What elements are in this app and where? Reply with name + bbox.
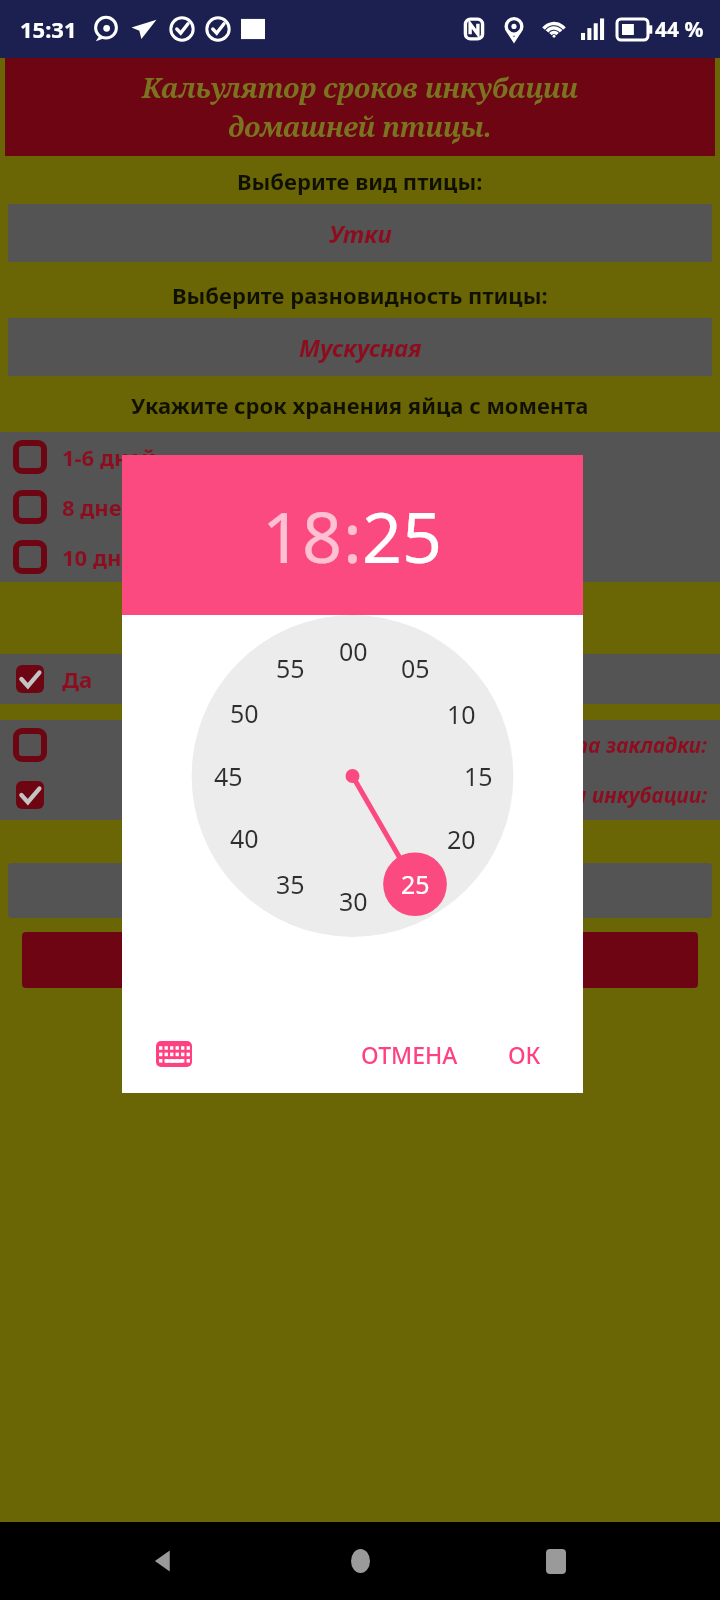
staticText: 15:31 xyxy=(20,14,77,44)
staticText: 05 xyxy=(401,651,430,685)
staticText: 18 xyxy=(262,488,343,583)
button[interactable]: 00 xyxy=(328,630,378,672)
button[interactable]: 1-6 дней xyxy=(0,432,720,482)
staticText: 25 xyxy=(362,488,443,583)
staticText: Дата закладки: xyxy=(542,731,708,760)
staticText: ОК xyxy=(508,1039,541,1070)
button[interactable]: Время инкубации: xyxy=(0,770,720,820)
staticText: : xyxy=(343,488,362,583)
button[interactable]: 50 xyxy=(219,692,269,734)
staticText: 15 xyxy=(464,759,493,793)
button[interactable]: 15 xyxy=(453,755,503,797)
staticText: 35 xyxy=(276,867,305,901)
staticText: Время инкубации: xyxy=(522,781,708,810)
button[interactable]: 25 xyxy=(390,863,440,905)
button[interactable]: Утки xyxy=(8,204,712,262)
staticText: Укажите срок хранения яйца с момента xyxy=(131,390,589,420)
button[interactable]: 8 дней xyxy=(0,482,720,532)
staticText: Утки xyxy=(329,217,392,250)
staticText: 00 xyxy=(339,634,368,668)
staticText: 55 xyxy=(276,651,305,685)
staticText: 25 xyxy=(401,867,430,901)
button[interactable]: 45 xyxy=(203,755,253,797)
button[interactable]: 10 xyxy=(436,693,486,735)
button[interactable]: Мускусная xyxy=(8,318,712,376)
button[interactable]: ОК xyxy=(496,1029,553,1080)
staticText: 8 дней xyxy=(62,492,137,522)
staticText: 20 xyxy=(447,822,476,856)
button[interactable]: 55 xyxy=(265,647,315,689)
button[interactable]: Да xyxy=(0,654,720,704)
staticText: ОТМЕНА xyxy=(361,1039,458,1070)
staticText: 19:00 xyxy=(330,874,390,907)
staticText: 10 дней xyxy=(62,542,150,572)
button[interactable]: 40 xyxy=(219,817,269,859)
button[interactable]: 05 xyxy=(390,647,440,689)
staticText: 50 xyxy=(230,696,259,730)
staticText: Введите время начала инкубации: xyxy=(171,826,549,855)
staticText: Мускусная xyxy=(299,331,422,364)
staticText: При хранении яйца более 6 дней продолжит… xyxy=(0,588,720,650)
staticText: 40 xyxy=(230,821,259,855)
button[interactable] xyxy=(22,932,698,988)
button[interactable]: Home xyxy=(328,1529,392,1593)
staticText: 44 % xyxy=(655,15,704,44)
staticText: Кальулятор сроков инкубации домашней пти… xyxy=(5,69,715,145)
button[interactable]: 10 дней xyxy=(0,532,720,582)
button[interactable]: Back xyxy=(132,1529,196,1593)
staticText: Выберите разновидность птицы: xyxy=(172,280,548,310)
button[interactable]: Switch to text input mode xyxy=(152,1032,196,1076)
button[interactable]: 30 xyxy=(328,880,378,922)
button[interactable]: Recent apps xyxy=(524,1529,588,1593)
staticText: 45 xyxy=(214,759,243,793)
button[interactable]: 25 xyxy=(362,488,443,583)
staticText: 10 xyxy=(447,697,476,731)
button[interactable]: ОТМЕНА xyxy=(349,1029,470,1080)
staticText: 1-6 дней xyxy=(62,442,157,472)
button[interactable]: 35 xyxy=(265,863,315,905)
button[interactable]: 18 xyxy=(262,488,343,583)
button[interactable]: Дата закладки: xyxy=(0,720,720,770)
button[interactable]: 20 xyxy=(436,818,486,860)
staticText: Да xyxy=(62,664,93,694)
button[interactable]: 19:00 xyxy=(8,863,712,918)
staticText: 30 xyxy=(339,884,368,918)
staticText: Выберите вид птицы: xyxy=(237,166,483,196)
